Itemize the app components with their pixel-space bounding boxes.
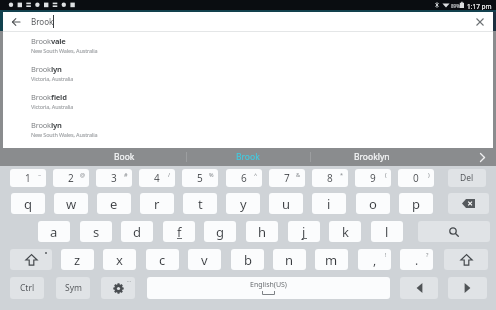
staticText: %	[209, 171, 214, 178]
staticText: #	[124, 171, 128, 178]
button[interactable]: b	[231, 249, 264, 270]
button[interactable]: 6	[226, 169, 262, 187]
button[interactable]: j	[288, 221, 320, 242]
staticText: z	[74, 251, 81, 269]
button[interactable]: 7	[269, 169, 305, 187]
button[interactable]: 9	[355, 169, 391, 187]
button[interactable]: 0	[398, 169, 434, 187]
button[interactable]: 5	[182, 169, 218, 187]
button[interactable]: x	[103, 249, 136, 270]
staticText: Sym	[65, 282, 82, 294]
button[interactable]	[448, 193, 489, 214]
button[interactable]: Brookfield	[3, 88, 493, 115]
button[interactable]: 2	[53, 169, 89, 187]
button[interactable]	[444, 249, 488, 270]
button[interactable]: ...	[101, 277, 135, 299]
staticText: !	[385, 251, 387, 258]
button[interactable]: f	[163, 221, 195, 242]
staticText: *	[340, 171, 344, 178]
button[interactable]: c	[146, 249, 179, 270]
staticText: 9	[370, 171, 376, 185]
button[interactable]: r	[140, 193, 174, 214]
button[interactable]: Brookvale	[3, 32, 493, 59]
staticText: y	[240, 195, 247, 213]
staticText: u	[282, 195, 291, 213]
staticText: w	[66, 195, 77, 213]
button[interactable]: k	[329, 221, 361, 242]
staticText: r	[154, 195, 160, 213]
staticText: &	[296, 171, 301, 178]
button[interactable]: English(US)	[147, 277, 390, 299]
button[interactable]: v	[188, 249, 221, 270]
button[interactable]: 8	[312, 169, 348, 187]
staticText: m	[325, 251, 338, 269]
staticText: .	[415, 252, 419, 268]
staticText: New South Wales, Australia	[31, 47, 98, 54]
button[interactable]	[10, 249, 52, 270]
button[interactable]: Brook	[186, 148, 310, 166]
button[interactable]: a	[38, 221, 70, 242]
button[interactable]	[472, 148, 492, 166]
button[interactable]: e	[97, 193, 131, 214]
button[interactable]: q	[11, 193, 45, 214]
staticText: s	[93, 223, 100, 241]
button[interactable]: t	[183, 193, 217, 214]
staticText: ?	[426, 251, 429, 258]
staticText: g	[216, 223, 224, 241]
button[interactable]: u	[269, 193, 303, 214]
button[interactable]	[448, 277, 487, 299]
button[interactable]: Ctrl	[10, 277, 44, 299]
staticText: 6	[241, 171, 247, 185]
button[interactable]: d	[121, 221, 153, 242]
button[interactable]: Brooklyn	[310, 148, 434, 166]
staticText: x	[116, 251, 123, 269]
staticText: 0	[413, 171, 419, 185]
staticText: New South Wales, Australia	[31, 131, 98, 138]
button[interactable]	[400, 277, 438, 299]
button[interactable]: s	[80, 221, 112, 242]
button[interactable]: 4	[139, 169, 175, 187]
staticText: Victoria, Australia	[31, 75, 74, 82]
staticText: 2	[68, 171, 74, 185]
staticText: Book	[114, 151, 135, 163]
staticText: c	[159, 251, 166, 269]
staticText: @	[80, 171, 85, 178]
button[interactable]: w	[54, 193, 88, 214]
button[interactable]: y	[226, 193, 260, 214]
staticText: 4	[154, 171, 160, 185]
staticText: t	[198, 195, 203, 213]
button[interactable]: Del	[448, 169, 486, 187]
button[interactable]: o	[356, 193, 390, 214]
button[interactable]: Brooklyn	[3, 60, 493, 87]
button[interactable]: .	[400, 249, 433, 270]
staticText: ...	[127, 277, 132, 284]
staticText: d	[133, 223, 141, 241]
button[interactable]: Brooklyn	[3, 116, 493, 143]
staticText: ,	[373, 252, 377, 268]
button[interactable]: i	[312, 193, 346, 214]
staticText: h	[258, 223, 267, 241]
button[interactable]: m	[315, 249, 348, 270]
button[interactable]: Sym	[56, 277, 90, 299]
button[interactable]: Book	[62, 148, 186, 166]
staticText: 5	[197, 171, 203, 185]
staticText: 89%	[451, 3, 460, 9]
staticText: Brookvale	[31, 36, 66, 46]
staticText: f	[177, 223, 182, 241]
button[interactable]: ,	[358, 249, 391, 270]
button[interactable]: z	[61, 249, 94, 270]
button[interactable]: g	[204, 221, 236, 242]
button[interactable]	[471, 13, 489, 30]
button[interactable]: h	[246, 221, 278, 242]
button[interactable]: p	[399, 193, 433, 214]
button[interactable]: 1	[10, 169, 46, 187]
button[interactable]: l	[371, 221, 403, 242]
staticText: )	[428, 171, 430, 178]
staticText: Brookfield	[31, 92, 67, 102]
staticText: Brook	[236, 151, 260, 163]
button[interactable]: n	[273, 249, 306, 270]
button[interactable]	[418, 221, 490, 242]
button[interactable]	[8, 13, 23, 30]
staticText: Victoria, Australia	[31, 103, 74, 110]
button[interactable]: 3	[96, 169, 132, 187]
